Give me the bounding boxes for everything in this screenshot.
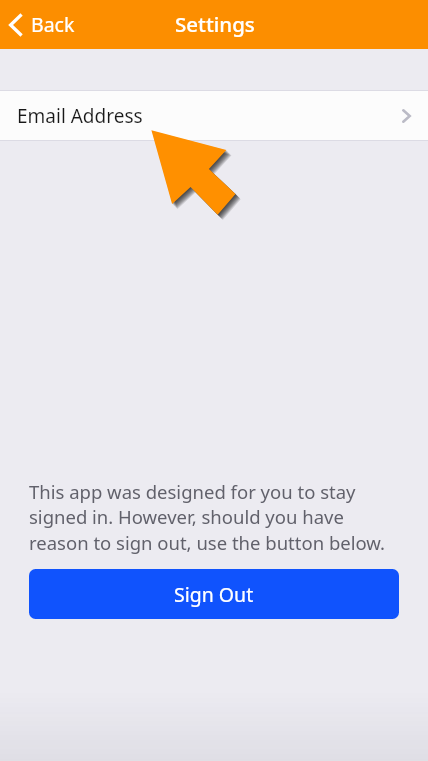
staticText: Back xyxy=(31,11,75,38)
staticText: This app was designed for you to stay si… xyxy=(29,479,394,556)
button[interactable]: Sign Out xyxy=(29,569,399,619)
button[interactable]: Back xyxy=(0,5,87,44)
button[interactable]: Email Address xyxy=(0,91,428,140)
staticText: Sign Out xyxy=(174,581,254,608)
staticText: Settings xyxy=(175,10,255,38)
staticText: Email Address xyxy=(17,103,143,129)
